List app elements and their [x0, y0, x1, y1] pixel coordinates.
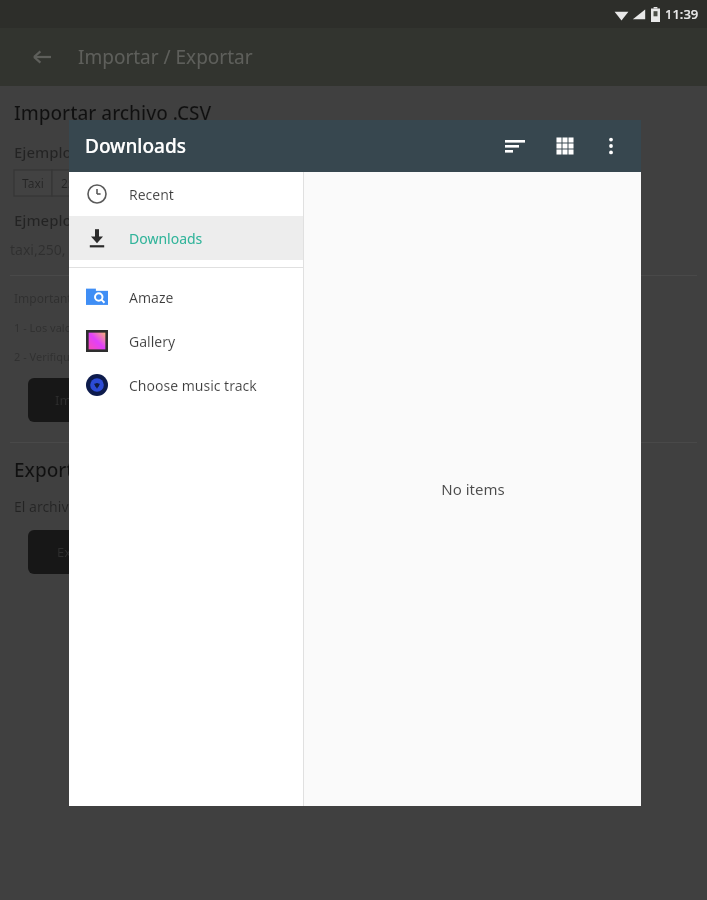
- staticText: Amaze: [129, 288, 174, 307]
- button[interactable]: Choose music track: [69, 363, 303, 407]
- staticText: El archivo: [14, 497, 77, 516]
- button[interactable]: Downloads: [69, 216, 303, 260]
- staticText: 1 - Los valor: [14, 320, 76, 335]
- staticText: Ejemplo: [14, 142, 72, 162]
- staticText: Importar: [55, 391, 111, 409]
- staticText: Downloads: [85, 133, 186, 159]
- staticText: Downloads: [129, 229, 203, 248]
- staticText: 11:39: [665, 5, 699, 23]
- button[interactable]: Importar: [28, 378, 138, 422]
- staticText: Exportar: [57, 543, 110, 561]
- button[interactable]: Back: [22, 37, 62, 77]
- button[interactable]: Gallery: [69, 319, 303, 363]
- staticText: Choose music track: [129, 376, 257, 395]
- staticText: Exportar: [14, 457, 93, 483]
- staticText: 2 - Verifique: [14, 349, 76, 364]
- button[interactable]: Amaze: [69, 275, 303, 319]
- staticText: Importar / Exportar: [78, 44, 253, 70]
- staticText: No items: [441, 479, 505, 499]
- button[interactable]: Sort: [495, 126, 535, 166]
- button[interactable]: Exportar: [28, 530, 138, 574]
- button[interactable]: Grid view: [545, 126, 585, 166]
- staticText: Importante: [14, 290, 79, 306]
- staticText: 250: [61, 175, 82, 191]
- button[interactable]: Recent: [69, 172, 303, 216]
- button[interactable]: More options: [591, 126, 631, 166]
- staticText: taxi,250,: [10, 240, 66, 259]
- staticText: Importar archivo .CSV: [14, 100, 212, 126]
- staticText: Taxi: [22, 175, 44, 191]
- staticText: Recent: [129, 185, 174, 204]
- staticText: Ejmeplo: [14, 210, 72, 230]
- staticText: Gallery: [129, 332, 176, 351]
